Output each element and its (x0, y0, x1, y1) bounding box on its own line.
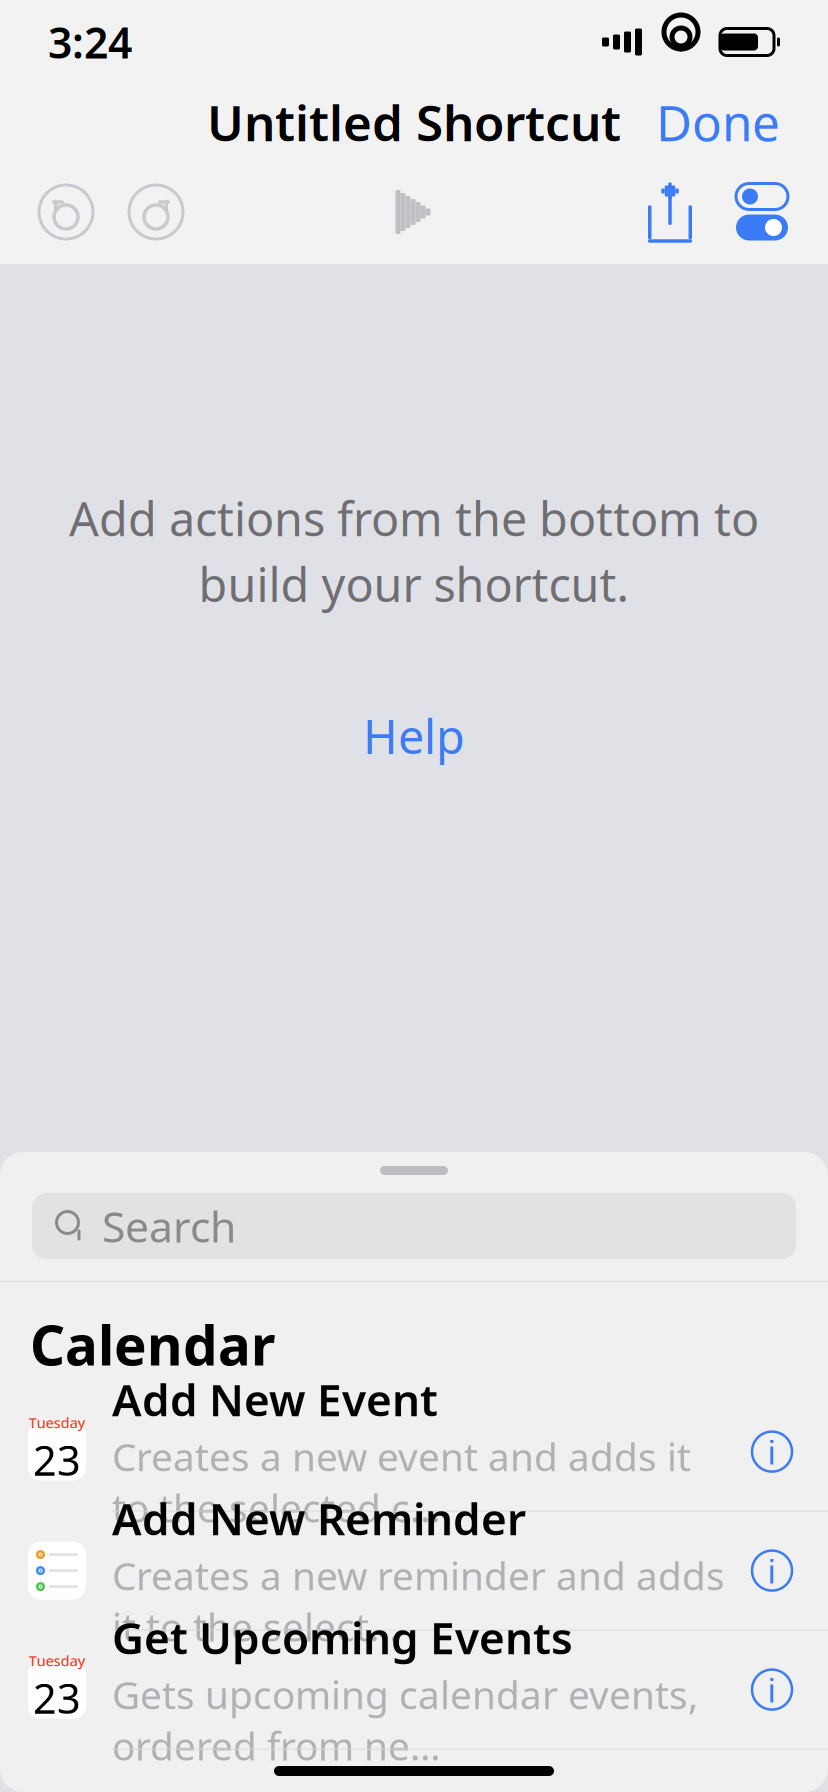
staticText: 23 (33, 1432, 81, 1487)
staticText: Get Upcoming Events (112, 1608, 573, 1666)
staticText: Tuesday (28, 1413, 85, 1432)
staticText: Add New Reminder (112, 1489, 526, 1547)
button[interactable]: Add New Reminder (0, 1512, 828, 1630)
staticText: Add actions from the bottom to (69, 487, 759, 549)
staticText: i (767, 1548, 776, 1593)
button[interactable]: Share (640, 176, 700, 248)
button[interactable]: Redo (126, 182, 186, 242)
staticText: Untitled Shortcut (207, 89, 621, 155)
staticText: Help (363, 705, 465, 767)
staticText: Creates a new reminder and adds it to th… (112, 1549, 725, 1652)
staticText: Gets upcoming calendar events, ordered f… (112, 1668, 698, 1771)
staticText: 3:24 (48, 14, 132, 70)
staticText: i (767, 1429, 776, 1474)
staticText: Calendar (30, 1308, 275, 1381)
staticText: build your shortcut. (198, 553, 629, 615)
staticText: i (767, 1667, 776, 1712)
staticText: Search (102, 1198, 236, 1254)
staticText: Creates a new event and adds it to the s… (112, 1430, 691, 1533)
staticText: Done (656, 89, 780, 155)
staticText: Tuesday (28, 1651, 85, 1670)
button[interactable]: Undo (36, 182, 96, 242)
button[interactable]: Search (32, 1193, 796, 1259)
button[interactable]: Tuesday (0, 1393, 828, 1511)
button[interactable]: Shortcut settings (732, 180, 792, 244)
staticText: 23 (33, 1670, 81, 1725)
staticText: Add New Event (112, 1370, 438, 1428)
button[interactable]: Done (636, 79, 800, 165)
button[interactable]: Tuesday (0, 1631, 828, 1749)
button[interactable]: Help (339, 693, 489, 779)
button[interactable]: Run shortcut (383, 182, 443, 242)
